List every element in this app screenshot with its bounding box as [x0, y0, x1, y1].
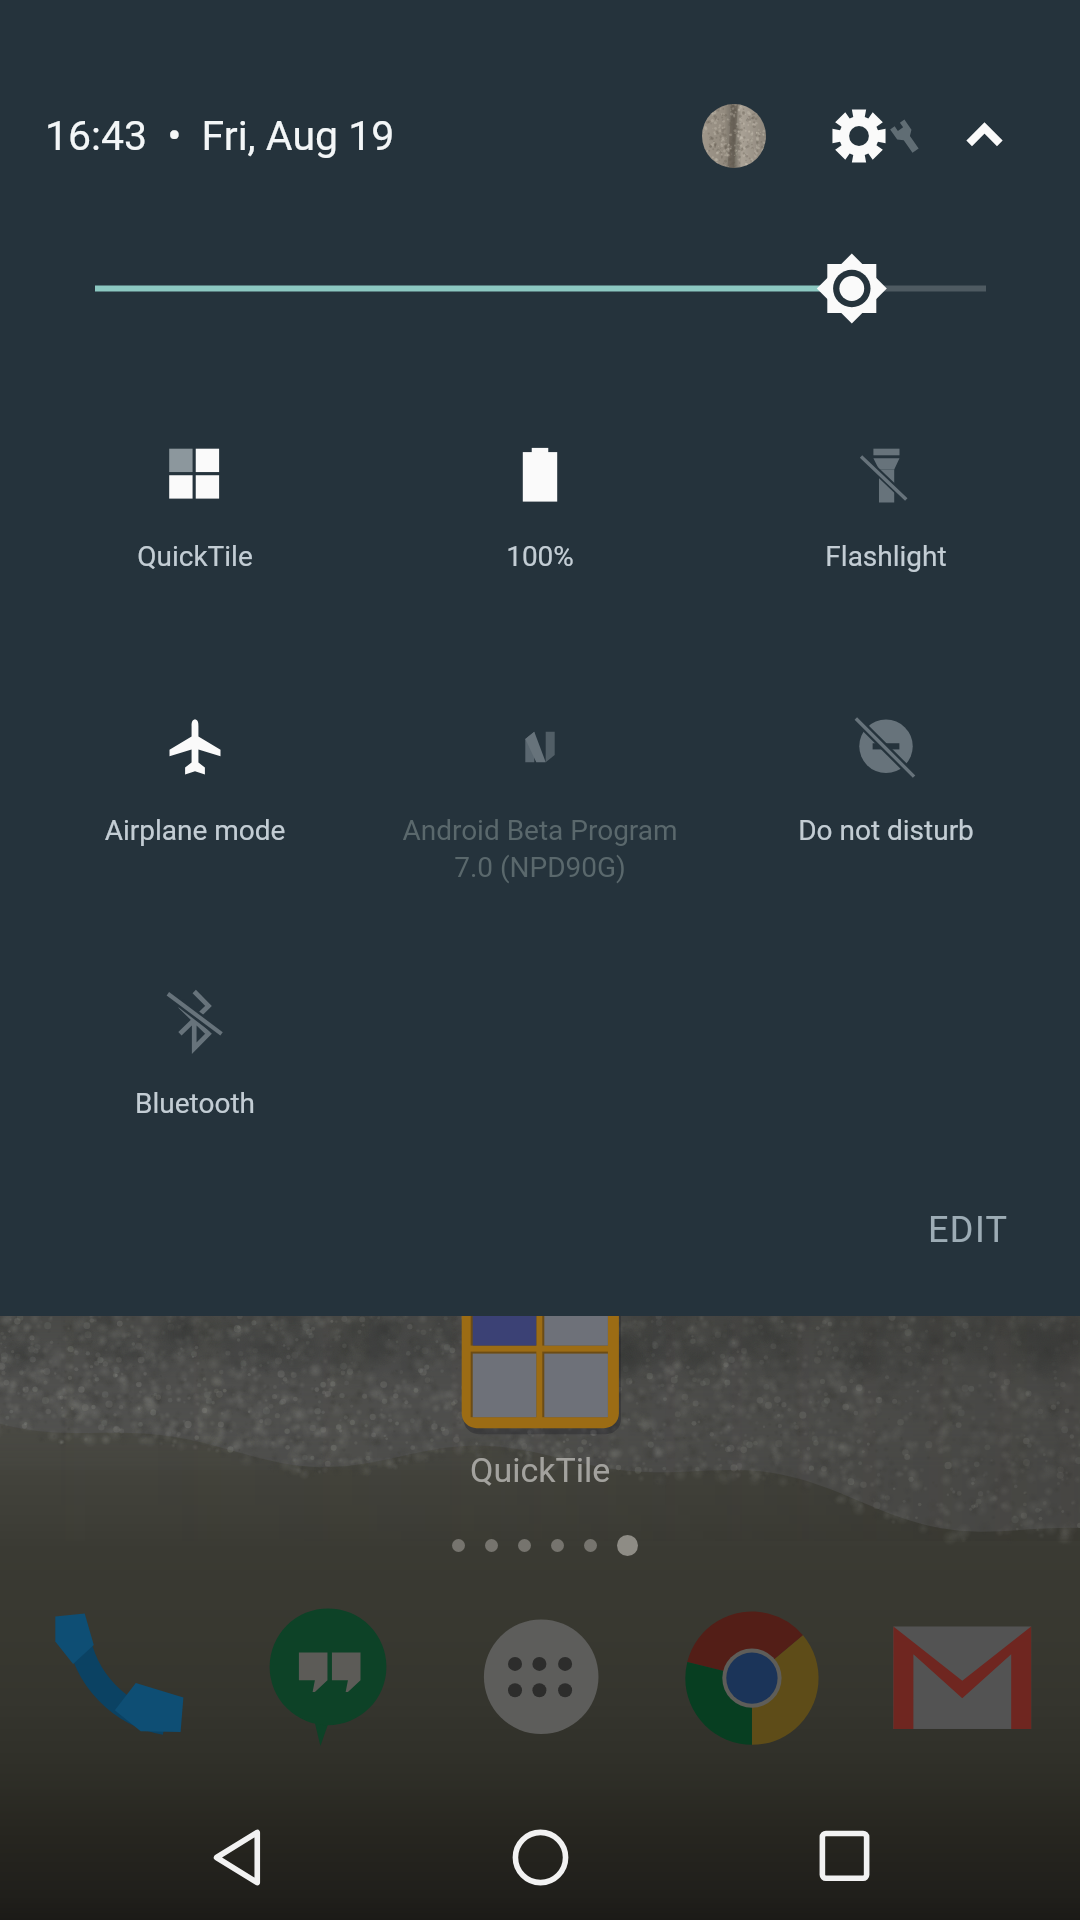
button[interactable]: Phone — [49, 1608, 189, 1748]
staticText: QuickTile — [30, 540, 360, 573]
button[interactable]: Chrome — [682, 1608, 822, 1748]
button[interactable]: Settings — [820, 100, 935, 175]
button[interactable]: QuickTile — [30, 404, 360, 604]
button[interactable]: 100% — [375, 404, 705, 604]
button[interactable]: Flashlight — [721, 404, 1051, 604]
button[interactable]: Brightness — [0, 250, 1080, 330]
staticText: EDIT — [928, 1209, 1009, 1251]
button[interactable]: Do not disturb — [721, 677, 1051, 877]
button[interactable]: Back — [177, 1797, 297, 1917]
button[interactable]: Bluetooth — [30, 950, 360, 1150]
button[interactable]: QuickTile app — [440, 1260, 640, 1500]
button[interactable]: Recent apps — [784, 1797, 904, 1917]
button[interactable]: Collapse quick settings — [945, 100, 1025, 172]
staticText: Do not disturb — [721, 814, 1051, 847]
staticText: Bluetooth — [30, 1087, 360, 1120]
staticText: Flashlight — [721, 540, 1051, 573]
staticText: Airplane mode — [30, 814, 360, 847]
button[interactable]: Android Beta Program 7.0 (NPD90G) — [375, 677, 705, 877]
button[interactable]: Gmail — [892, 1608, 1032, 1748]
staticText: QuickTile — [470, 1450, 611, 1490]
button[interactable]: Home — [480, 1797, 600, 1917]
button[interactable]: Hangouts — [259, 1608, 399, 1748]
button[interactable]: User profile — [702, 104, 766, 168]
staticText: 100% — [375, 540, 705, 573]
staticText: 16:43 • Fri, Aug 19 — [45, 112, 395, 160]
button[interactable]: EDIT — [878, 1185, 1058, 1275]
staticText: Android Beta Program 7.0 (NPD90G) — [375, 814, 705, 884]
button[interactable]: Airplane mode — [30, 677, 360, 877]
button[interactable]: All apps — [471, 1608, 611, 1748]
